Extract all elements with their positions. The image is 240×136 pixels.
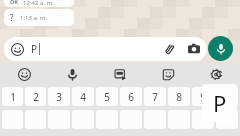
button[interactable]: Emoji — [11, 43, 24, 56]
button[interactable]: Stickers — [144, 63, 192, 85]
staticText: 0 — [224, 90, 230, 104]
staticText: 4 — [80, 90, 86, 104]
staticText: P — [213, 88, 227, 118]
button[interactable]: 8 — [168, 87, 190, 106]
staticText: 1:13 a. m. — [20, 14, 48, 22]
button[interactable]: GIF — [96, 63, 144, 85]
staticText: 2 — [33, 90, 39, 104]
staticText: ? — [10, 12, 14, 23]
button[interactable]: Voice input — [48, 63, 96, 85]
button[interactable]: ok — [4, 0, 74, 7]
staticText: 9 — [200, 90, 206, 104]
button[interactable]: Emoji — [0, 63, 48, 85]
button[interactable]: 2 — [25, 87, 46, 106]
staticText: ok — [10, 0, 18, 7]
button[interactable]: Camera — [188, 43, 200, 55]
button[interactable]: 9 — [192, 87, 214, 106]
staticText: 12:42 a. m. — [23, 0, 54, 7]
staticText: P — [31, 42, 38, 56]
button[interactable]: Attach — [163, 43, 176, 56]
button[interactable]: Keyboard settings — [192, 63, 240, 85]
button[interactable] — [216, 110, 238, 129]
staticText: 5 — [104, 90, 110, 104]
button[interactable]: 3 — [48, 87, 70, 106]
button[interactable]: Record voice message — [208, 36, 233, 61]
staticText: 8 — [176, 90, 182, 104]
button[interactable]: 0 — [216, 87, 238, 106]
staticText: 3 — [56, 90, 62, 104]
button[interactable]: ? — [4, 9, 74, 26]
button[interactable]: 6 — [120, 87, 142, 106]
staticText: 1 — [10, 90, 16, 104]
button[interactable]: Emoji — [4, 37, 207, 61]
button[interactable]: 5 — [96, 87, 118, 106]
button[interactable]: 4 — [72, 87, 94, 106]
button[interactable]: 7 — [144, 87, 166, 106]
button[interactable]: 1 — [2, 87, 23, 106]
staticText: 6 — [128, 90, 134, 104]
staticText: 7 — [152, 90, 158, 104]
